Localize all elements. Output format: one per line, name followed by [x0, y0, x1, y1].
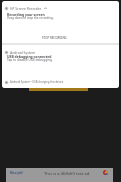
button[interactable]: Ad info — [103, 170, 108, 175]
staticText: Tap to disable USB debugging. — [7, 58, 53, 62]
staticText: Android System — [10, 50, 36, 55]
staticText: Android System • USB charging this devic… — [10, 80, 64, 84]
button[interactable]: Nice job! — [6, 168, 113, 182]
staticText: Nice job! — [10, 171, 23, 175]
button[interactable]: STOP RECORDING — [7, 34, 102, 41]
button[interactable]: HF Screen Recorder — [2, 1, 119, 43]
staticText: Recording your screen — [7, 12, 45, 17]
button[interactable]: Android System • USB charging this devic… — [2, 74, 119, 88]
staticText: STOP RECORDING — [42, 36, 67, 40]
staticText: This is a 468x60 test ad. — [44, 171, 91, 177]
staticText: USB debugging connected — [7, 54, 52, 59]
button[interactable]: Android System — [2, 45, 119, 74]
staticText: HF Screen Recorder — [10, 6, 42, 11]
staticText: Drag down to stop the recording. — [7, 16, 54, 20]
